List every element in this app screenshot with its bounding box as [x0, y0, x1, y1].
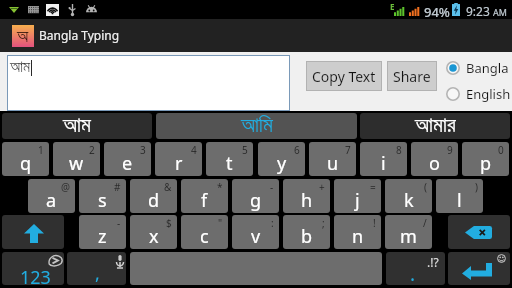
button[interactable]: Period: [386, 252, 445, 285]
staticText: Bangla: [466, 59, 509, 77]
staticText: a: [46, 188, 57, 213]
button[interactable]: p: [462, 142, 509, 176]
button[interactable]: Share: [387, 61, 437, 91]
staticText: w: [69, 151, 84, 176]
staticText: /: [423, 216, 427, 230]
button[interactable]: w: [53, 142, 100, 176]
staticText: i: [381, 151, 386, 176]
button[interactable]: m: [385, 215, 432, 249]
staticText: 7: [345, 143, 351, 157]
button[interactable]: t: [206, 142, 253, 176]
staticText: !: [373, 216, 376, 230]
button[interactable]: c: [181, 215, 228, 249]
button[interactable]: Shift: [2, 215, 64, 249]
staticText: ;: [322, 216, 325, 230]
staticText: ": [218, 216, 223, 230]
staticText: ): [475, 180, 478, 194]
button[interactable]: e: [104, 142, 151, 176]
button[interactable]: n: [334, 215, 381, 249]
staticText: Bangla Typing: [39, 27, 120, 43]
button[interactable]: Comma: [67, 252, 126, 285]
button[interactable]: u: [309, 142, 356, 176]
staticText: অ: [17, 28, 29, 46]
staticText: x: [149, 224, 159, 249]
staticText: 1: [38, 143, 44, 157]
staticText: .: [410, 261, 416, 285]
staticText: $: [166, 216, 172, 230]
button[interactable]: x: [130, 215, 177, 249]
staticText: 8: [396, 143, 402, 157]
staticText: -: [117, 216, 121, 230]
staticText: আম: [63, 114, 91, 136]
button[interactable]: y: [258, 142, 305, 176]
staticText: r: [175, 151, 183, 176]
button[interactable]: v: [232, 215, 279, 249]
button[interactable]: r: [155, 142, 202, 176]
button[interactable]: আম: [2, 113, 152, 139]
staticText: k: [404, 188, 414, 213]
staticText: Share: [393, 67, 431, 86]
button[interactable]: Bangla: [446, 58, 509, 78]
staticText: #: [114, 180, 121, 194]
button[interactable]: o: [411, 142, 458, 176]
staticText: 6: [294, 143, 300, 157]
staticText: s: [98, 188, 107, 213]
staticText: @: [61, 180, 70, 194]
button[interactable]: h: [283, 179, 330, 213]
button[interactable]: g: [232, 179, 279, 213]
button[interactable]: b: [283, 215, 330, 249]
button[interactable]: Enter: [448, 252, 510, 285]
staticText: 94%: [424, 3, 450, 21]
button[interactable]: s: [79, 179, 126, 213]
staticText: আমি: [241, 114, 273, 136]
staticText: 2: [89, 143, 95, 157]
staticText: j: [355, 188, 360, 213]
staticText: ,: [95, 261, 100, 285]
staticText: Copy Text: [312, 67, 376, 86]
button[interactable]: f: [181, 179, 228, 213]
button[interactable]: আমার: [360, 113, 510, 139]
staticText: d: [148, 188, 160, 213]
staticText: AM: [493, 6, 507, 18]
button[interactable]: k: [385, 179, 432, 213]
staticText: .!?: [427, 254, 439, 270]
staticText: t: [226, 151, 233, 176]
staticText: -: [270, 180, 274, 194]
button[interactable]: আম: [7, 55, 290, 111]
staticText: আমার: [415, 114, 456, 136]
staticText: =: [370, 180, 376, 194]
staticText: z: [98, 224, 107, 249]
button[interactable]: q: [2, 142, 49, 176]
staticText: f: [201, 188, 208, 213]
staticText: y: [277, 151, 287, 176]
button[interactable]: i: [360, 142, 407, 176]
staticText: 3: [140, 143, 146, 157]
staticText: +: [319, 180, 325, 194]
staticText: :: [271, 216, 274, 230]
button[interactable]: l: [436, 179, 483, 213]
staticText: o: [429, 151, 440, 176]
button[interactable]: d: [130, 179, 177, 213]
button[interactable]: a: [28, 179, 75, 213]
staticText: q: [20, 151, 32, 176]
button[interactable]: 123: [2, 252, 64, 285]
staticText: u: [327, 151, 339, 176]
staticText: h: [301, 188, 313, 213]
staticText: e: [122, 151, 133, 176]
button[interactable]: আমি: [156, 113, 357, 139]
button[interactable]: Copy Text: [306, 61, 382, 91]
staticText: p: [480, 151, 492, 176]
button[interactable]: j: [334, 179, 381, 213]
staticText: আম: [10, 59, 31, 75]
button[interactable]: Backspace: [448, 215, 510, 249]
staticText: 0: [498, 143, 504, 157]
staticText: g: [250, 188, 262, 213]
button[interactable]: z: [79, 215, 126, 249]
button[interactable]: English: [446, 84, 511, 104]
staticText: E: [390, 1, 395, 12]
staticText: &: [164, 180, 172, 194]
staticText: 9: [447, 143, 453, 157]
staticText: m: [400, 224, 417, 249]
staticText: b: [301, 224, 313, 249]
